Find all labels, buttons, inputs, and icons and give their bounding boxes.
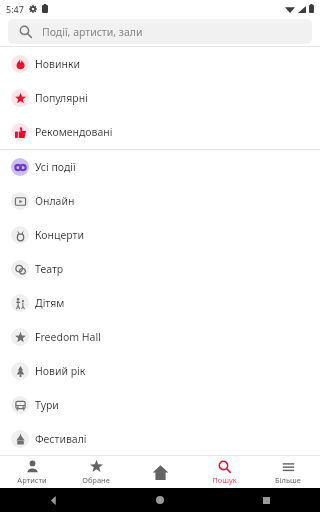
- staticText: Обране: [82, 475, 110, 485]
- button[interactable]: Усі події: [0, 150, 320, 184]
- staticText: Новинки: [35, 57, 81, 71]
- staticText: Рекомендовані: [35, 125, 113, 139]
- staticText: Події, артисти, зали: [42, 25, 143, 39]
- button[interactable]: Більше: [256, 456, 320, 488]
- staticText: Пошук: [212, 475, 237, 485]
- button[interactable]: Новинки: [0, 47, 320, 81]
- button[interactable]: Тури: [0, 388, 320, 422]
- button[interactable]: Події, артисти, зали: [8, 19, 312, 44]
- button[interactable]: Популярні: [0, 81, 320, 115]
- staticText: Тури: [35, 398, 59, 412]
- staticText: Більше: [275, 475, 301, 485]
- staticText: Артисти: [17, 475, 47, 485]
- button[interactable]: Фестивалі: [0, 422, 320, 455]
- button[interactable]: Пошук: [192, 456, 256, 488]
- staticText: Фестивалі: [35, 432, 87, 446]
- button[interactable]: Новий рік: [0, 354, 320, 388]
- button[interactable]: Артисти: [0, 456, 64, 488]
- button[interactable]: Back: [0, 488, 106, 512]
- button[interactable]: Home: [106, 488, 213, 512]
- button[interactable]: Онлайн: [0, 184, 320, 218]
- staticText: Усі події: [35, 160, 76, 174]
- button[interactable]: Театр: [0, 252, 320, 286]
- staticText: Популярні: [35, 91, 88, 105]
- button[interactable]: Recents: [213, 488, 320, 512]
- button[interactable]: Концерти: [0, 218, 320, 252]
- button[interactable]: Freedom Hall: [0, 320, 320, 354]
- staticText: Онлайн: [35, 194, 75, 208]
- button[interactable]: Дітям: [0, 286, 320, 320]
- button[interactable]: Рекомендовані: [0, 115, 320, 149]
- staticText: Новий рік: [35, 364, 86, 378]
- staticText: Театр: [35, 262, 64, 276]
- staticText: Дітям: [35, 296, 65, 310]
- button[interactable]: Обране: [64, 456, 128, 488]
- staticText: 5:47: [6, 3, 24, 15]
- button[interactable]: Home: [128, 456, 192, 488]
- staticText: Freedom Hall: [35, 330, 101, 344]
- staticText: Концерти: [35, 228, 84, 242]
